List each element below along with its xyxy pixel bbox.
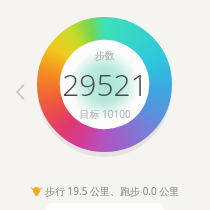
staticText: 步数 — [95, 49, 115, 62]
button[interactable]: Previous — [9, 79, 31, 105]
staticText: 目标 10100 — [79, 107, 131, 121]
staticText: 步行 19.5 公里、跑步 0.0 公里 — [45, 184, 180, 198]
staticText: 29521 — [62, 64, 148, 105]
button[interactable]: 步行 19.5 公里、跑步 0.0 公里 — [0, 181, 210, 201]
button[interactable]: Step goal ring — [37, 17, 172, 152]
